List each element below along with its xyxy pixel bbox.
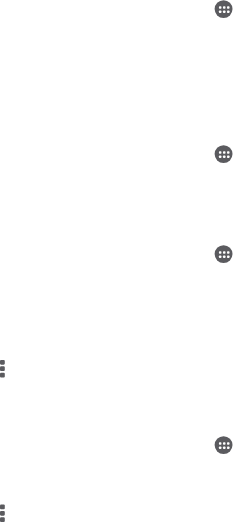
button[interactable]: Apps [215,245,233,263]
button[interactable]: More options [0,505,5,523]
button[interactable]: Apps [215,145,233,163]
button[interactable]: Apps [215,436,233,454]
button[interactable]: Apps [215,0,233,18]
button[interactable]: More options [0,360,5,378]
